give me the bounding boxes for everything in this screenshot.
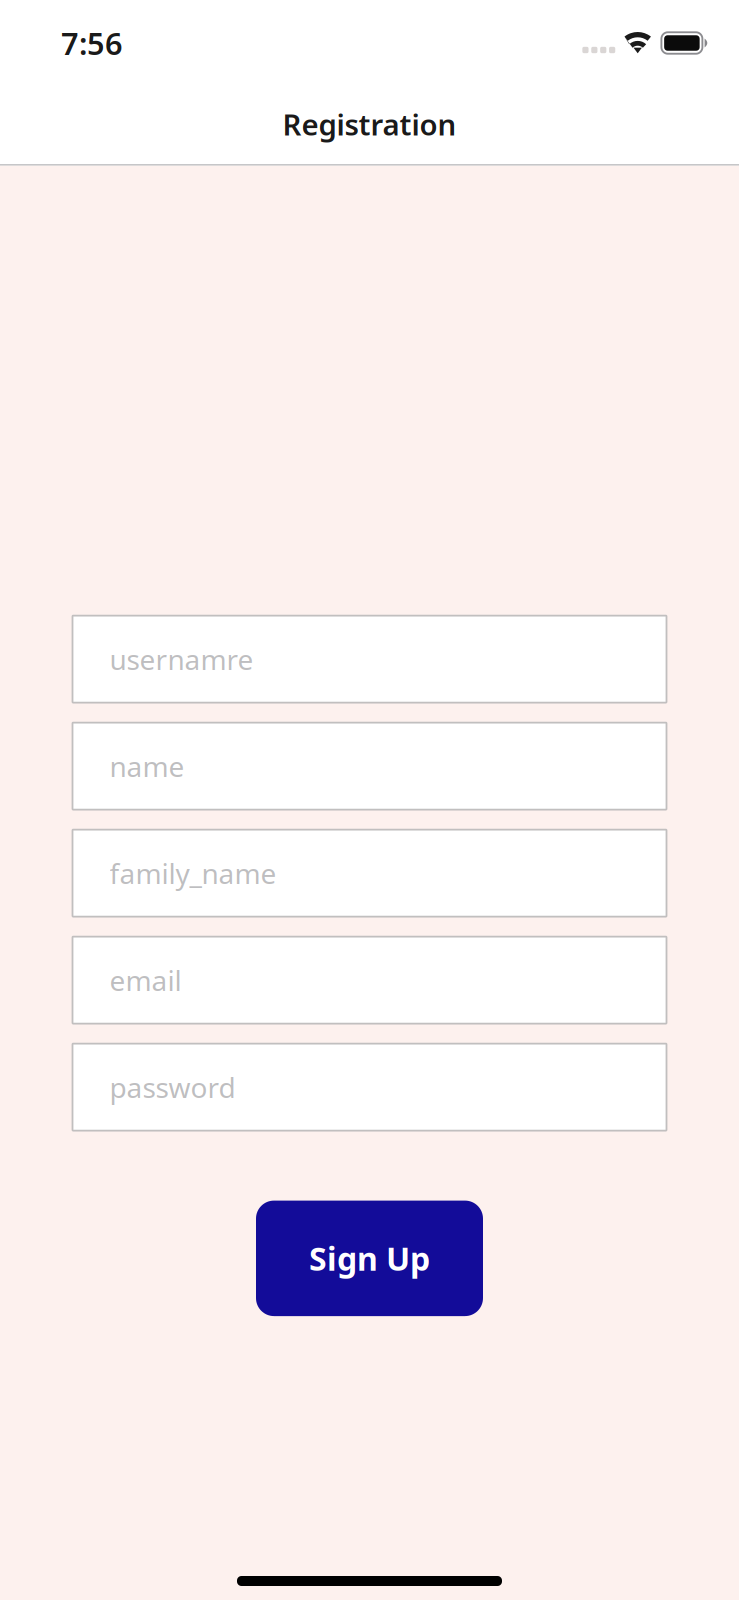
staticText: Registration (282, 104, 456, 143)
button[interactable]: family_name (72, 830, 666, 917)
button[interactable]: usernamre (72, 616, 666, 703)
staticText: family_name (109, 854, 276, 892)
button[interactable]: password (72, 1044, 666, 1131)
button[interactable]: Sign Up (256, 1201, 483, 1316)
staticText: name (109, 747, 184, 785)
staticText: email (109, 961, 181, 999)
staticText: Sign Up (309, 1237, 430, 1280)
staticText: password (109, 1068, 235, 1106)
staticText: usernamre (109, 640, 253, 678)
button[interactable]: name (72, 723, 666, 810)
staticText: 7:56 (61, 23, 123, 63)
button[interactable]: email (72, 937, 666, 1024)
